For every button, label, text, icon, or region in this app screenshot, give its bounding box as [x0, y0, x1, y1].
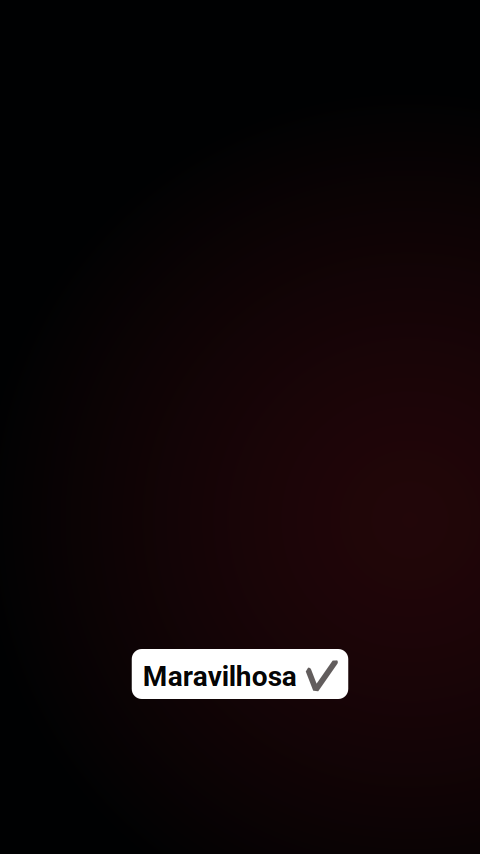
button[interactable]: Maravilhosa — [132, 649, 348, 699]
staticText: Maravilhosa — [143, 660, 297, 693]
